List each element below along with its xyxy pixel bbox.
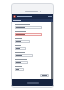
- button[interactable]: [12, 14, 53, 19]
- button[interactable]: [15, 38, 49, 43]
- button[interactable]: [15, 59, 49, 64]
- button[interactable]: [15, 52, 49, 57]
- button[interactable]: [15, 24, 49, 29]
- button[interactable]: [15, 66, 49, 71]
- button[interactable]: [15, 31, 49, 36]
- button[interactable]: [12, 19, 53, 22]
- button[interactable]: Submit: [40, 74, 49, 77]
- button[interactable]: [15, 45, 49, 50]
